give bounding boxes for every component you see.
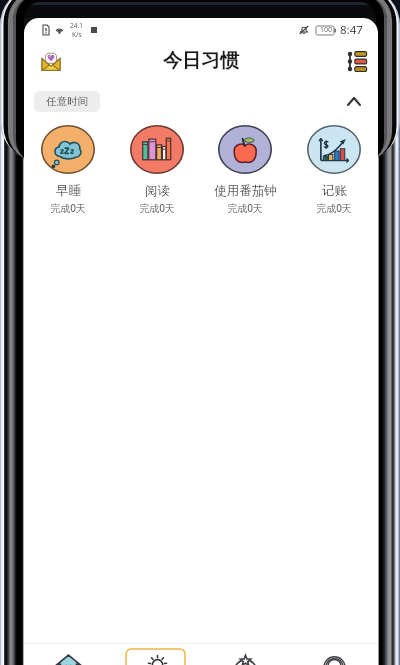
staticText: 记账 [322,183,347,199]
button[interactable]: Today [113,644,201,665]
staticText: 任意时间 [46,95,88,108]
button[interactable]: Profile [290,644,378,665]
button[interactable]: Home [24,644,112,665]
button[interactable]: 阅读 [113,125,201,215]
staticText: 完成0天 [316,201,352,215]
staticText: 阅读 [145,183,170,199]
staticText: 24.1 [70,21,83,30]
staticText: K/s [72,30,82,39]
button[interactable]: 任意时间 [34,91,100,112]
staticText: 8:47 [340,22,363,38]
button[interactable]: 早睡 [24,125,112,215]
staticText: 今日习惯 [163,49,239,73]
button[interactable]: 使用番茄钟 [201,125,289,215]
button[interactable]: Timeline [338,43,374,79]
staticText: 完成0天 [139,201,175,215]
staticText: 完成0天 [227,201,263,215]
button[interactable]: Messages [33,43,69,79]
staticText: 早睡 [56,183,81,199]
button[interactable]: Collapse section [340,87,368,115]
staticText: 100 [320,25,333,35]
button[interactable]: 记账 [290,125,378,215]
staticText: 完成0天 [50,201,86,215]
button[interactable]: Achievements [201,644,289,665]
staticText: 使用番茄钟 [214,183,277,199]
